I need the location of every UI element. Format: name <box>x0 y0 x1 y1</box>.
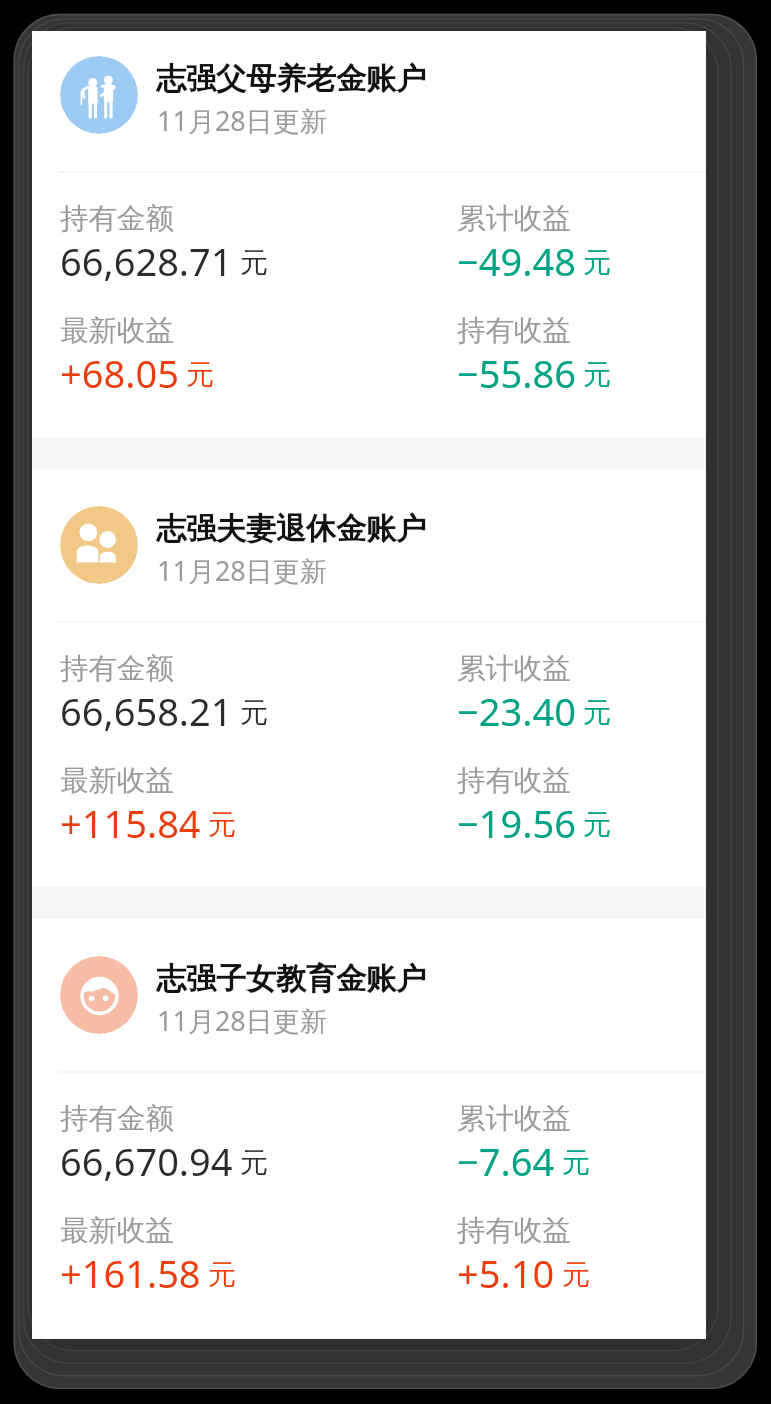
staticText: 最新收益 <box>60 313 174 349</box>
staticText: 元 <box>583 695 611 730</box>
staticText: −7.64 <box>457 1135 555 1187</box>
staticText: 持有金额 <box>60 651 174 687</box>
staticText: 持有收益 <box>457 1213 571 1249</box>
staticText: −49.48 <box>457 235 576 287</box>
staticText: +68.05 <box>60 347 179 399</box>
staticText: +115.84 <box>60 797 201 849</box>
button[interactable]: 父母养老金账户图标 <box>32 31 706 437</box>
staticText: 累计收益 <box>457 1101 571 1137</box>
staticText: −55.86 <box>457 347 576 399</box>
staticText: 元 <box>562 1145 590 1180</box>
other: 父母养老金账户图标 <box>60 56 138 134</box>
staticText: 志强子女教育金账户 <box>156 960 426 998</box>
staticText: 元 <box>562 1257 590 1292</box>
staticText: 元 <box>240 695 268 730</box>
staticText: +5.10 <box>457 1247 555 1299</box>
staticText: 累计收益 <box>457 651 571 687</box>
staticText: 元 <box>583 807 611 842</box>
button[interactable]: 夫妻退休金账户图标 <box>32 469 706 887</box>
staticText: 志强夫妻退休金账户 <box>156 510 426 548</box>
staticText: 元 <box>583 245 611 280</box>
other: 夫妻退休金账户图标 <box>60 506 138 584</box>
staticText: 累计收益 <box>457 201 571 237</box>
staticText: 元 <box>583 357 611 392</box>
staticText: 元 <box>208 1257 236 1292</box>
other: 子女教育金账户图标 <box>60 956 138 1034</box>
staticText: 66,628.71 <box>60 235 233 287</box>
staticText: 11月28日更新 <box>157 552 327 589</box>
staticText: 66,658.21 <box>60 685 233 737</box>
staticText: 志强父母养老金账户 <box>156 60 426 98</box>
staticText: +161.58 <box>60 1247 201 1299</box>
staticText: 最新收益 <box>60 763 174 799</box>
staticText: 持有金额 <box>60 1101 174 1137</box>
staticText: 11月28日更新 <box>157 102 327 139</box>
button[interactable]: 子女教育金账户图标 <box>32 919 706 1327</box>
staticText: −19.56 <box>457 797 576 849</box>
staticText: 元 <box>240 245 268 280</box>
staticText: 66,670.94 <box>60 1135 233 1187</box>
staticText: 持有金额 <box>60 201 174 237</box>
staticText: 持有收益 <box>457 763 571 799</box>
staticText: 元 <box>208 807 236 842</box>
staticText: 最新收益 <box>60 1213 174 1249</box>
staticText: 持有收益 <box>457 313 571 349</box>
staticText: −23.40 <box>457 685 576 737</box>
staticText: 元 <box>240 1145 268 1180</box>
staticText: 11月28日更新 <box>157 1002 327 1039</box>
staticText: 元 <box>186 357 214 392</box>
